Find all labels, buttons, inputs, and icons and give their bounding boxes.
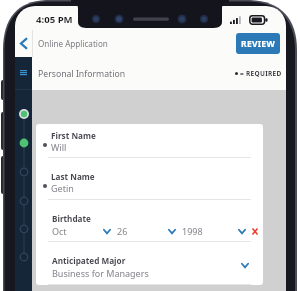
staticText: Personal Information [38,68,126,80]
button[interactable]: Clear birthdate [250,226,260,236]
staticText: First Name [51,130,96,141]
staticText: Online Application [38,38,108,49]
staticText: Getin [51,182,74,194]
staticText: Birthdate [52,213,91,224]
button[interactable]: Oct [52,225,103,237]
staticText: Oct [52,225,67,237]
button[interactable]: Anticipated Major [36,242,263,284]
button[interactable]: 1998 [182,225,238,237]
staticText: = REQUIRED [240,69,282,78]
staticText: 26 [117,225,128,237]
staticText: REVIEW [241,38,275,50]
staticText: Will [51,141,67,153]
button[interactable]: Last Name [36,158,263,199]
staticText: Anticipated Major [52,255,126,266]
staticText: Last Name [51,171,95,182]
button[interactable]: First Name [36,124,263,157]
button[interactable]: 26 [117,225,168,237]
staticText: 4:05 PM [36,13,73,26]
staticText: 1998 [182,225,203,237]
button[interactable]: Back [15,30,32,57]
staticText: Business for Managers [52,267,149,279]
button[interactable]: REVIEW [236,33,280,54]
button[interactable]: Menu [19,68,28,77]
